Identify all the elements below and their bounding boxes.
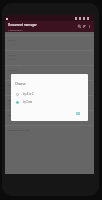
staticText: OK	[76, 112, 81, 116]
staticText: by A to Z	[23, 92, 34, 96]
staticText: Ebook (7)	[8, 114, 18, 117]
staticText: Excel (5)	[8, 69, 17, 72]
staticText: 12.4 MB	[8, 118, 16, 121]
staticText: 3 documents	[8, 28, 23, 31]
staticText: Compressed files (14)	[8, 129, 30, 132]
staticText: Choose	[15, 82, 26, 86]
staticText: 6.50 MB	[8, 103, 16, 106]
button[interactable]: Powerpoint (2)	[5, 95, 94, 110]
button[interactable]: by A to Z	[11, 92, 88, 96]
staticText: 3.84 MB	[8, 73, 16, 76]
staticText: Word (9)	[8, 84, 17, 87]
button[interactable]: Sort	[82, 24, 87, 29]
button[interactable]: Ebook (7)	[5, 110, 94, 125]
button[interactable]: Excel (5)	[5, 65, 94, 80]
button[interactable]: Search	[77, 24, 82, 29]
staticText: 8.12 MB	[8, 88, 16, 91]
staticText: Text (4)	[8, 39, 16, 42]
staticText: by Date	[23, 100, 33, 104]
button[interactable]: by Date	[11, 100, 88, 104]
staticText: PDF (13)	[8, 54, 17, 57]
staticText: Powerpoint (2)	[8, 99, 23, 102]
button[interactable]: Word (9)	[5, 80, 94, 95]
staticText: Document manager	[8, 23, 37, 27]
button[interactable]: More options	[87, 24, 92, 29]
button[interactable]: OK	[74, 111, 83, 117]
